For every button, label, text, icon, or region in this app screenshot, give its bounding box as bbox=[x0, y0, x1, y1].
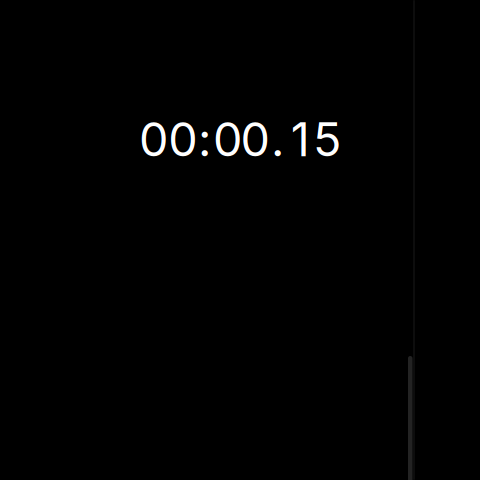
staticText: : bbox=[198, 111, 211, 167]
staticText: 1 bbox=[291, 111, 310, 167]
staticText: 0 bbox=[240, 111, 269, 167]
staticText: 5 bbox=[313, 111, 341, 167]
staticText: 0 bbox=[213, 111, 242, 167]
staticText: 0 bbox=[168, 111, 197, 167]
staticText: . bbox=[271, 111, 284, 167]
staticText: 0 bbox=[139, 111, 168, 167]
